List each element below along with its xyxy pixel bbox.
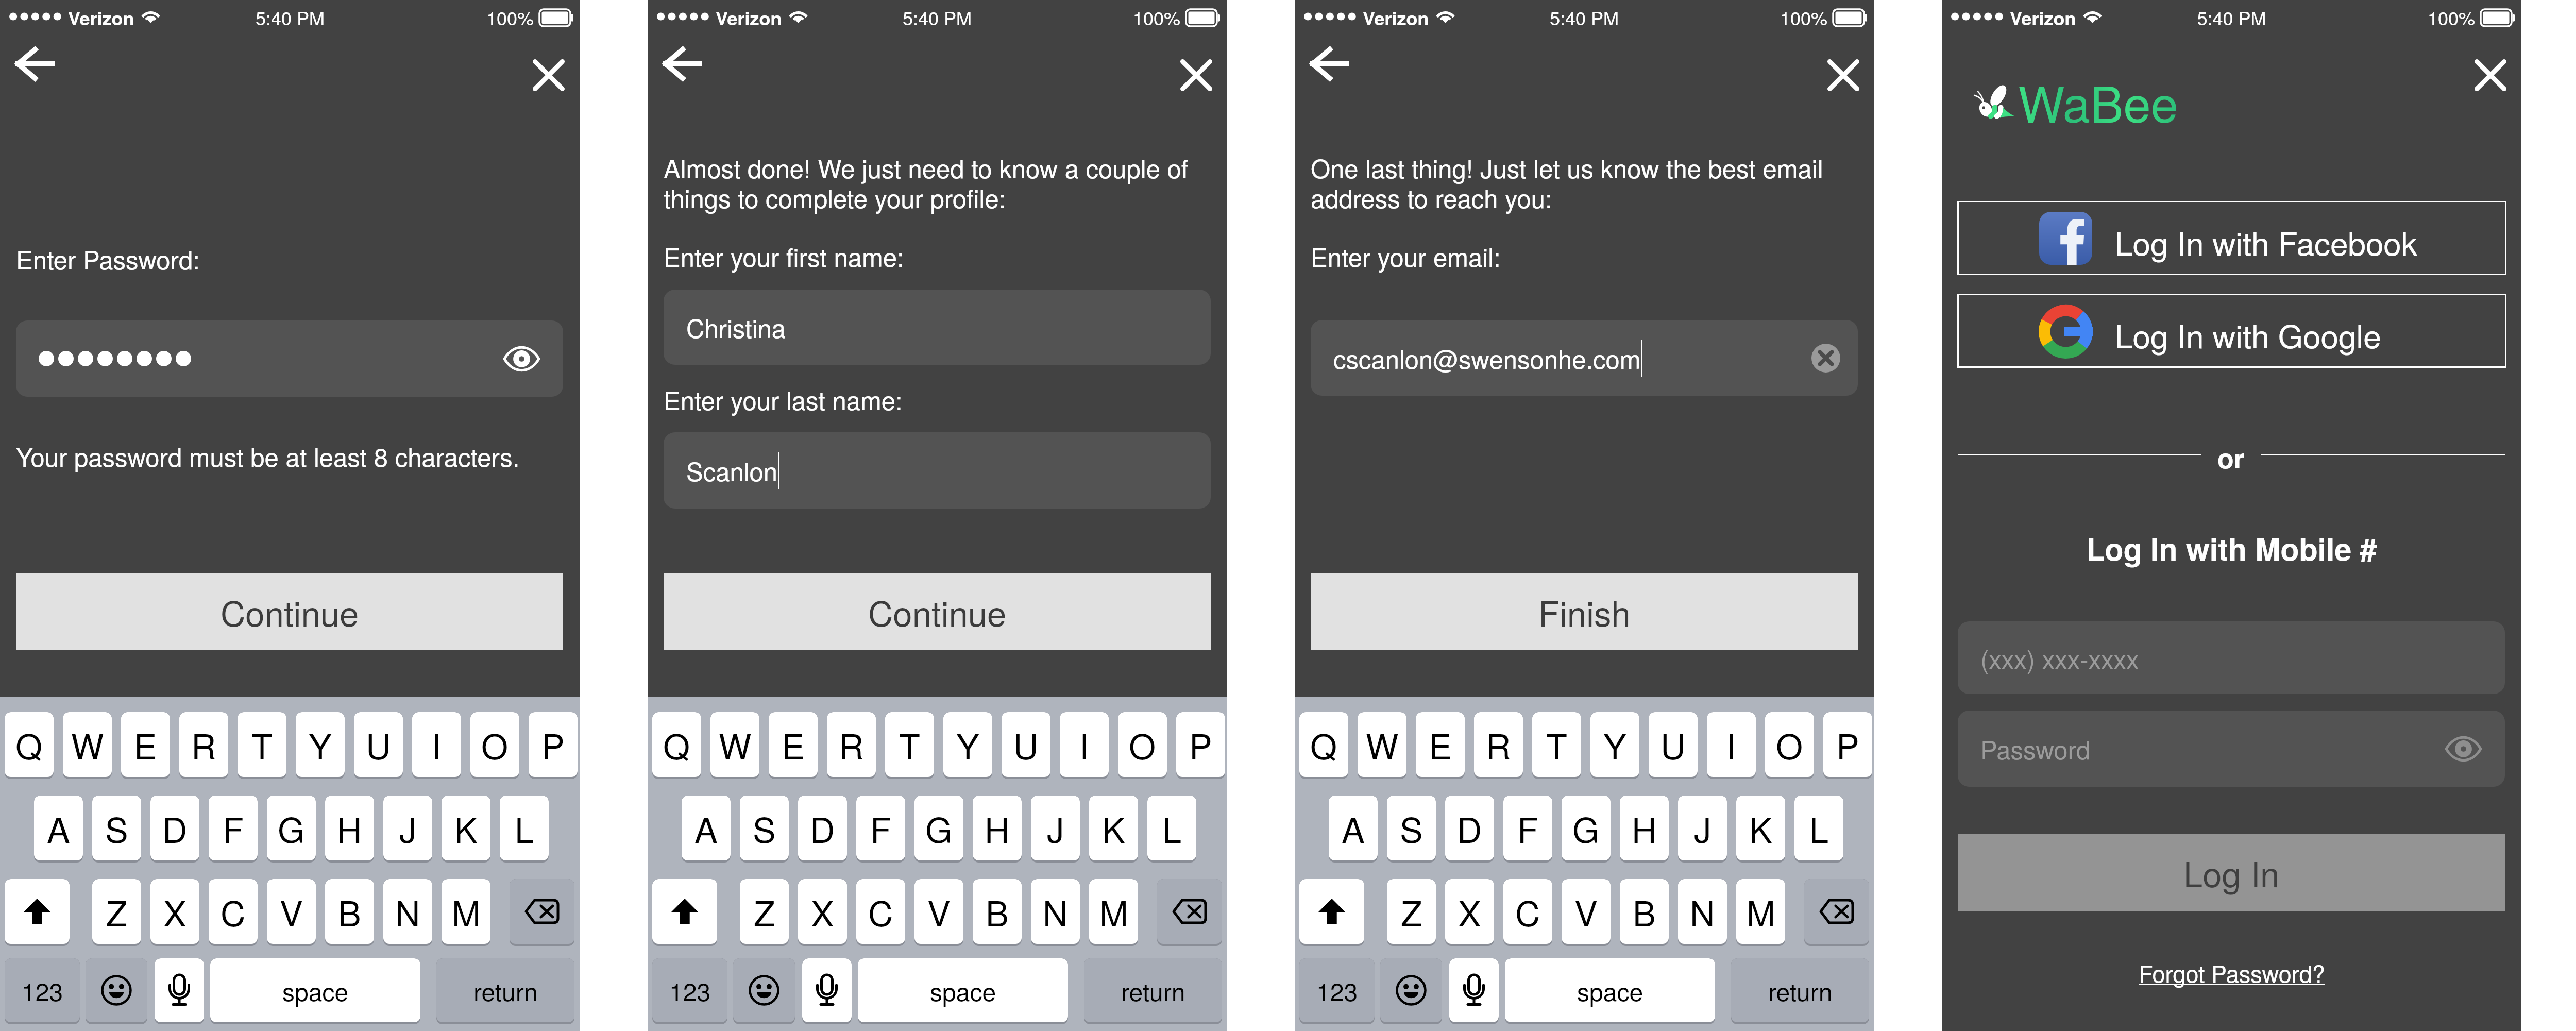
button[interactable]: A	[1329, 796, 1378, 863]
button[interactable]: Q	[652, 712, 701, 779]
button[interactable]: I	[1707, 712, 1756, 779]
button[interactable]: Close	[528, 55, 569, 96]
button[interactable]: V	[914, 879, 963, 946]
button[interactable]: Q	[5, 712, 54, 779]
button[interactable]: Y	[1590, 712, 1639, 779]
button[interactable]: O	[470, 712, 519, 779]
button[interactable]: R	[827, 712, 876, 779]
button[interactable]: B	[325, 879, 374, 946]
button[interactable]: U	[354, 712, 403, 779]
button[interactable]: return	[1731, 958, 1869, 1024]
button[interactable]: Back	[657, 43, 708, 84]
button[interactable]: L	[1147, 796, 1196, 863]
button[interactable]: W	[1358, 712, 1406, 779]
button[interactable]: I	[412, 712, 461, 779]
button[interactable]	[1380, 958, 1442, 1024]
button[interactable]: M	[442, 879, 490, 946]
button[interactable]: Close	[2470, 55, 2511, 96]
button[interactable]: B	[973, 879, 1022, 946]
button[interactable]: Scanlon	[664, 432, 1211, 509]
button[interactable]	[5, 879, 70, 946]
button[interactable]: Clear text	[1806, 339, 1845, 378]
button[interactable]: Y	[943, 712, 992, 779]
button[interactable]: Back	[9, 43, 61, 84]
button[interactable]: S	[92, 796, 141, 863]
button[interactable]: T	[238, 712, 286, 779]
button[interactable]: X	[150, 879, 199, 946]
button[interactable]: M	[1736, 879, 1785, 946]
button[interactable]: R	[1474, 712, 1523, 779]
button[interactable]: A	[34, 796, 83, 863]
button[interactable]: Z	[92, 879, 141, 946]
button[interactable]: space	[210, 958, 420, 1024]
button[interactable]: 123	[1299, 958, 1375, 1024]
button[interactable]	[1449, 958, 1499, 1024]
button[interactable]: D	[1445, 796, 1494, 863]
button[interactable]: 123	[652, 958, 727, 1024]
button[interactable]: V	[1562, 879, 1611, 946]
button[interactable]: return	[436, 958, 574, 1024]
button[interactable]: T	[1532, 712, 1581, 779]
button[interactable]: J	[1678, 796, 1727, 863]
button[interactable]: K	[1736, 796, 1785, 863]
button[interactable]: space	[858, 958, 1068, 1024]
button[interactable]	[1804, 879, 1869, 946]
button[interactable]	[86, 958, 147, 1024]
button[interactable]: W	[63, 712, 112, 779]
button[interactable]: Log In with Google	[1957, 294, 2506, 368]
button[interactable]: Show password	[2441, 726, 2485, 771]
button[interactable]: M	[1089, 879, 1138, 946]
button[interactable]: cscanlon@swensonhe.com	[1311, 320, 1858, 396]
button[interactable]: Show password	[16, 320, 563, 397]
button[interactable]: O	[1765, 712, 1814, 779]
button[interactable]: N	[383, 879, 432, 946]
button[interactable]: S	[1387, 796, 1436, 863]
button[interactable]: E	[121, 712, 170, 779]
button[interactable]: Log In with Facebook	[1957, 201, 2506, 275]
button[interactable]: F	[856, 796, 905, 863]
button[interactable]: C	[1503, 879, 1552, 946]
button[interactable]: (xxx) xxx-xxxx	[1958, 621, 2505, 694]
button[interactable]: Continue	[16, 573, 563, 650]
button[interactable]: Continue	[664, 573, 1211, 650]
button[interactable]	[510, 879, 574, 946]
button[interactable]: G	[914, 796, 963, 863]
button[interactable]	[733, 958, 795, 1024]
button[interactable]: Close	[1176, 55, 1217, 96]
button[interactable]: A	[682, 796, 731, 863]
button[interactable]: I	[1060, 712, 1109, 779]
button[interactable]: Log In	[1958, 834, 2505, 911]
button[interactable]	[802, 958, 852, 1024]
button[interactable]: V	[267, 879, 316, 946]
button[interactable]: C	[856, 879, 905, 946]
button[interactable]: N	[1031, 879, 1080, 946]
button[interactable]: P	[1823, 712, 1872, 779]
button[interactable]: W	[710, 712, 759, 779]
button[interactable]: Close	[1823, 55, 1864, 96]
button[interactable]: 123	[5, 958, 80, 1024]
button[interactable]: Christina	[664, 290, 1211, 365]
button[interactable]: Forgot Password?	[2133, 953, 2330, 992]
button[interactable]: J	[1031, 796, 1080, 863]
button[interactable]	[1157, 879, 1222, 946]
button[interactable]: L	[500, 796, 549, 863]
button[interactable]: Q	[1299, 712, 1348, 779]
button[interactable]: G	[1562, 796, 1611, 863]
button[interactable]: D	[150, 796, 199, 863]
button[interactable]	[155, 958, 204, 1024]
button[interactable]: E	[1416, 712, 1465, 779]
button[interactable]: P	[529, 712, 578, 779]
button[interactable]: return	[1084, 958, 1222, 1024]
button[interactable]: H	[325, 796, 374, 863]
button[interactable]: U	[1002, 712, 1050, 779]
button[interactable]: space	[1505, 958, 1715, 1024]
button[interactable]: D	[798, 796, 847, 863]
button[interactable]: R	[179, 712, 228, 779]
button[interactable]: O	[1118, 712, 1167, 779]
button[interactable]: F	[209, 796, 258, 863]
button[interactable]: C	[209, 879, 258, 946]
button[interactable]: N	[1678, 879, 1727, 946]
button[interactable]: J	[383, 796, 432, 863]
button[interactable]: X	[798, 879, 847, 946]
button[interactable]	[652, 879, 717, 946]
